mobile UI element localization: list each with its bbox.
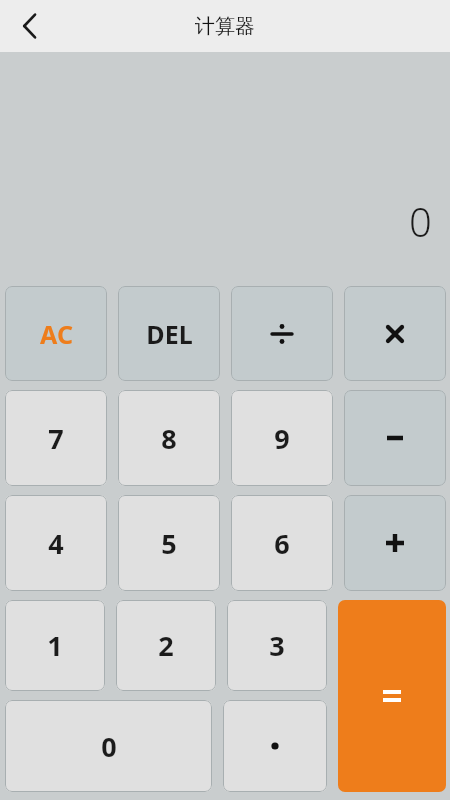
button[interactable]: 4 [5,495,107,591]
staticText: 2 [158,627,174,664]
button[interactable]: Minus [344,390,446,486]
button[interactable]: Decimal point [223,700,327,792]
button[interactable]: 9 [231,390,333,486]
staticText: 6 [274,525,290,562]
staticText: 1 [47,627,63,664]
staticText: AC [40,317,73,351]
button[interactable]: 0 [5,700,212,792]
button[interactable]: Plus [344,495,446,591]
button[interactable]: 7 [5,390,107,486]
staticText: 计算器 [195,14,255,39]
staticText: 7 [48,420,64,457]
button[interactable]: Multiply [344,286,446,381]
staticText: 3 [269,627,285,664]
button[interactable]: 3 [227,600,327,691]
button[interactable]: 2 [116,600,216,691]
button[interactable]: Equals [338,600,446,792]
button[interactable]: AC [5,286,107,381]
staticText: 0 [409,194,432,248]
staticText: 0 [101,728,117,765]
staticText: 4 [48,525,64,562]
button[interactable]: Divide [231,286,333,381]
staticText: 8 [161,420,177,457]
button[interactable]: Back [8,4,52,48]
button[interactable]: 8 [118,390,220,486]
button[interactable]: 1 [5,600,105,691]
staticText: DEL [146,317,193,351]
staticText: 9 [274,420,290,457]
button[interactable]: 6 [231,495,333,591]
button[interactable]: 5 [118,495,220,591]
staticText: 5 [161,525,177,562]
button[interactable]: DEL [118,286,220,381]
